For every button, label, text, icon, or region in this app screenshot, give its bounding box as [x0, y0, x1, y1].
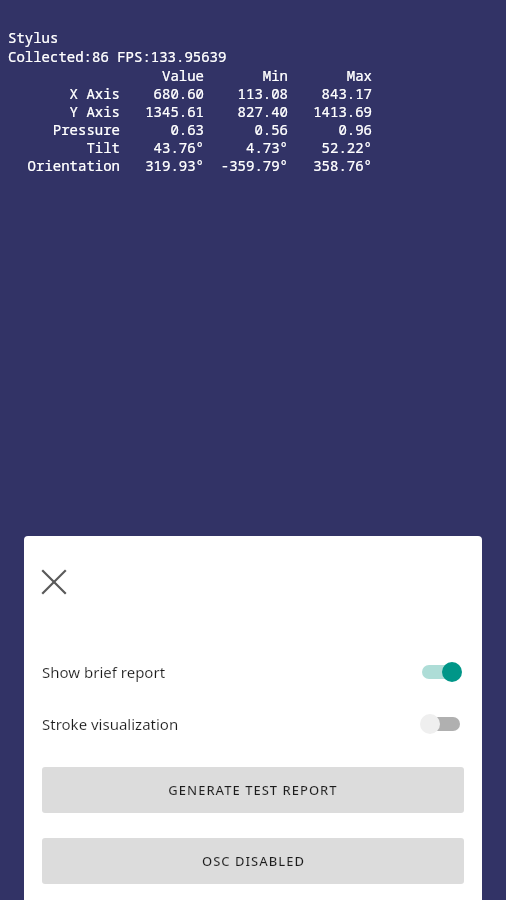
staticText: 680.60 — [120, 84, 204, 102]
staticText: X Axis — [8, 84, 120, 102]
button[interactable]: Stroke visualization — [24, 698, 482, 750]
staticText: Min — [204, 66, 288, 84]
staticText: 0.56 — [204, 120, 288, 138]
staticText: 52.22° — [288, 138, 372, 156]
staticText: Stylus — [8, 28, 59, 47]
staticText: 0.63 — [120, 120, 204, 138]
staticText: 319.93° — [120, 156, 204, 174]
staticText: Pressure — [8, 120, 120, 138]
staticText: Tilt — [8, 138, 120, 156]
staticText: 43.76° — [120, 138, 204, 156]
staticText: 113.08 — [204, 84, 288, 102]
staticText: OSC DISABLED — [202, 852, 305, 870]
staticText: 843.17 — [288, 84, 372, 102]
button[interactable]: GENERATE TEST REPORT — [42, 767, 464, 813]
staticText: 0.96 — [288, 120, 372, 138]
button[interactable]: Close — [30, 558, 78, 606]
staticText: 1345.61 — [120, 102, 204, 120]
staticText: -359.79° — [204, 156, 288, 174]
staticText: GENERATE TEST REPORT — [168, 781, 338, 799]
staticText: Collected:86 FPS:133.95639 — [8, 47, 227, 66]
staticText: Value — [120, 66, 204, 84]
staticText: 358.76° — [288, 156, 372, 174]
button[interactable]: Show brief report — [24, 646, 482, 698]
staticText: Orientation — [8, 156, 120, 174]
staticText: 1413.69 — [288, 102, 372, 120]
button[interactable]: OSC DISABLED — [42, 838, 464, 884]
staticText: Y Axis — [8, 102, 120, 120]
staticText: Show brief report — [42, 662, 418, 682]
staticText: Stroke visualization — [42, 714, 418, 734]
staticText: 827.40 — [204, 102, 288, 120]
staticText: 4.73° — [204, 138, 288, 156]
staticText: Max — [288, 66, 372, 84]
